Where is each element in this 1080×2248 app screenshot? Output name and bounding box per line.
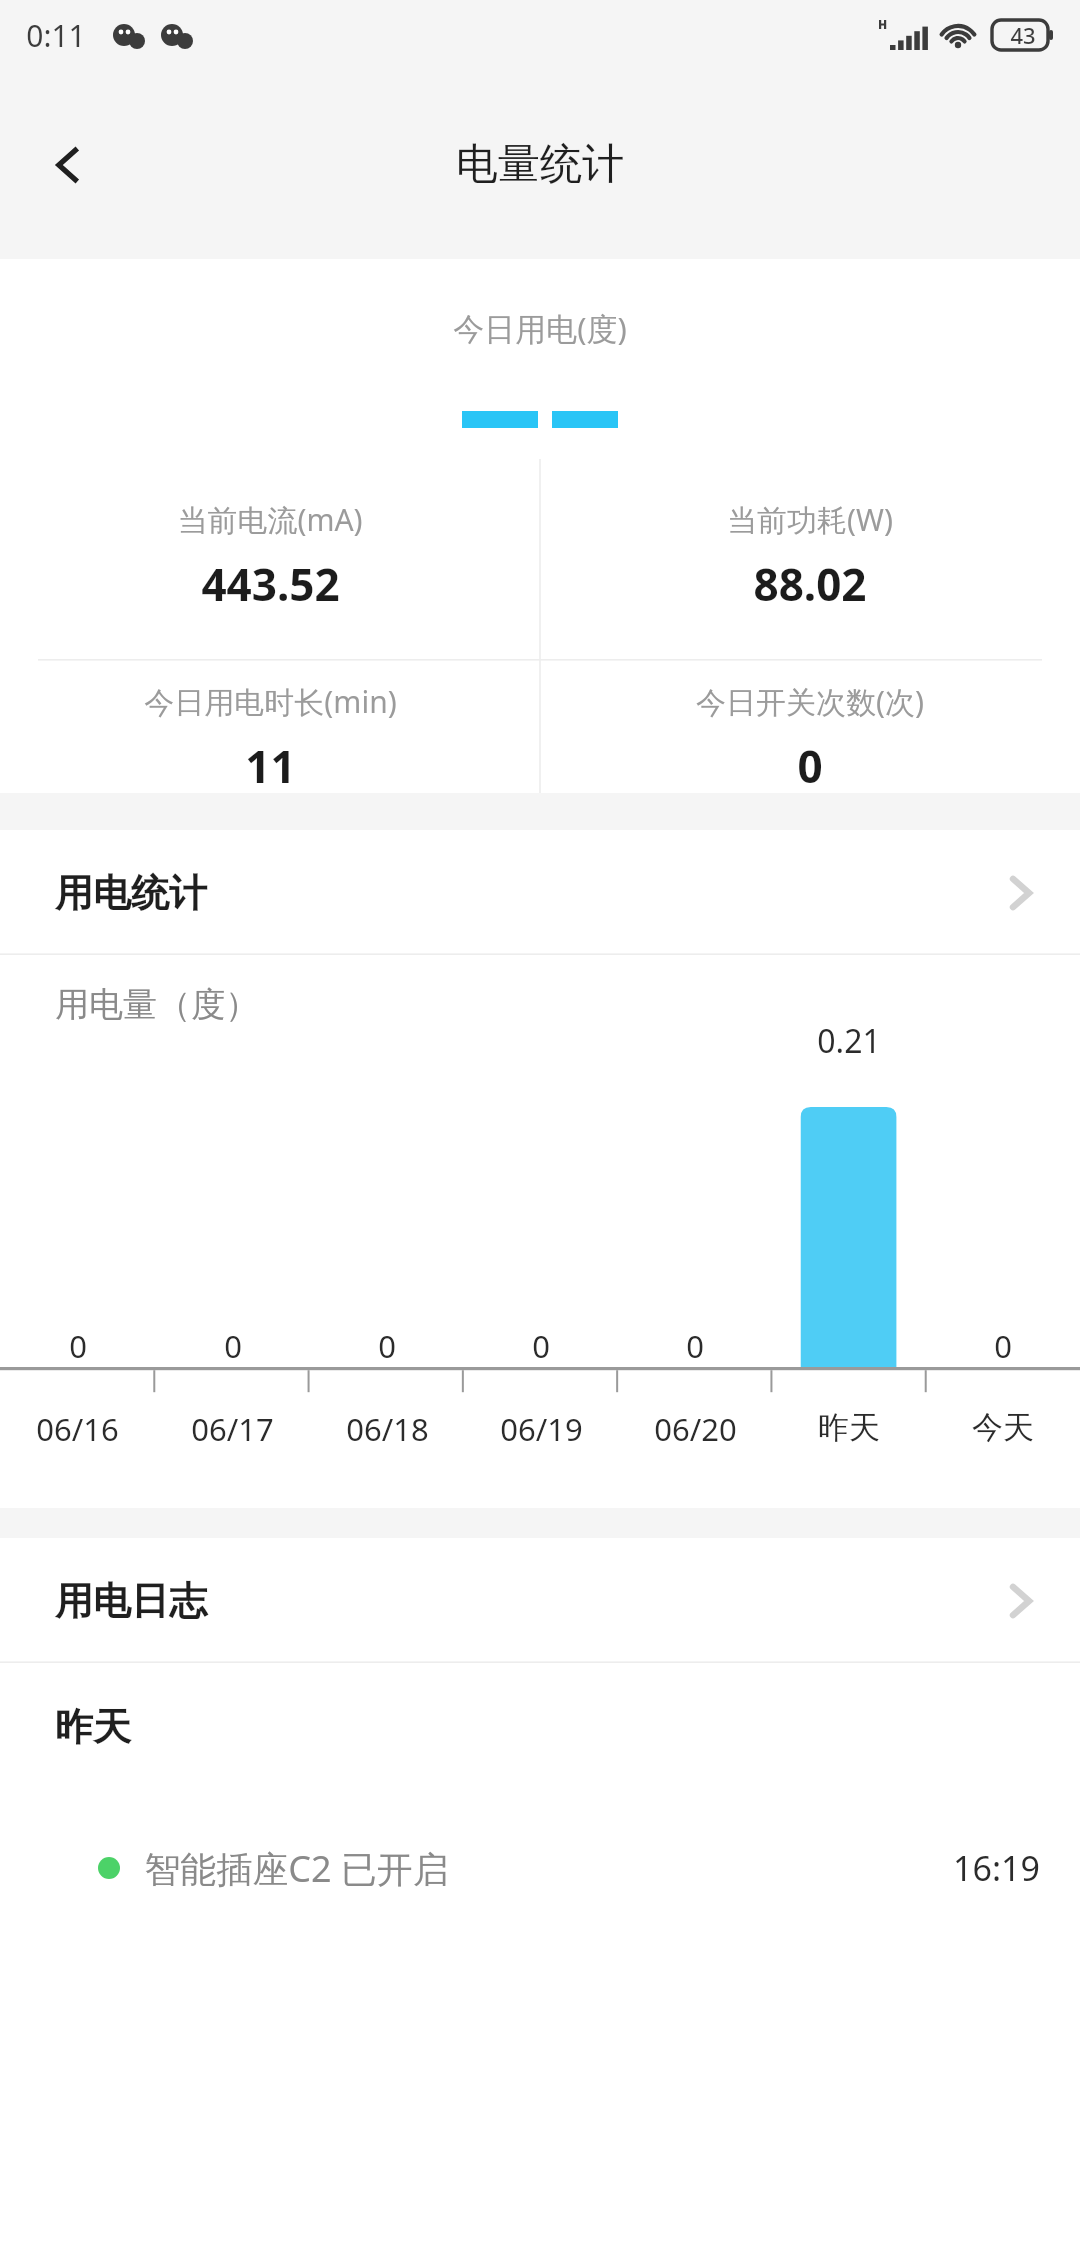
staticText: 0 — [224, 1325, 242, 1367]
staticText: 0 — [797, 736, 823, 793]
staticText: 16:19 — [953, 1845, 1040, 1891]
staticText: 0 — [378, 1325, 396, 1367]
button[interactable]: 用电统计 — [0, 830, 1080, 955]
staticText: 0 — [994, 1325, 1012, 1367]
staticText: 用电日志 — [55, 1577, 207, 1625]
staticText: 0.21 — [817, 1019, 881, 1063]
staticText: 今天 — [972, 1408, 1034, 1447]
staticText: 88.02 — [753, 554, 867, 614]
staticText: 当前电流(mA) — [177, 499, 363, 540]
staticText: 今日用电(度) — [453, 307, 627, 349]
staticText: 06/17 — [191, 1408, 274, 1450]
button[interactable]: 用电日志 — [0, 1538, 1080, 1663]
staticText: 当前功耗(W) — [727, 499, 893, 540]
staticText: 用电统计 — [55, 869, 207, 917]
staticText: 443.52 — [201, 554, 340, 614]
staticText: 11 — [245, 736, 296, 793]
staticText: 0 — [532, 1325, 550, 1367]
staticText: 0 — [69, 1325, 87, 1367]
button[interactable]: Back — [22, 119, 114, 211]
staticText: 今日用电时长(min) — [144, 681, 397, 722]
staticText: 06/16 — [36, 1408, 119, 1450]
staticText: 06/18 — [346, 1408, 429, 1450]
staticText: 06/20 — [654, 1408, 737, 1450]
staticText: 智能插座C2 已开启 — [144, 1844, 449, 1893]
staticText: 43 — [1010, 20, 1036, 50]
staticText: 今日开关次数(次) — [696, 681, 924, 722]
staticText: 昨天 — [55, 1703, 131, 1751]
staticText: 昨天 — [818, 1408, 880, 1447]
staticText: 用电量（度） — [55, 983, 259, 1026]
staticText: 0:11 — [26, 15, 86, 56]
staticText: 电量统计 — [456, 138, 624, 191]
staticText: 06/19 — [500, 1408, 583, 1450]
button[interactable]: 智能插座C2 已开启 — [0, 1823, 1080, 1913]
staticText: 0 — [686, 1325, 704, 1367]
